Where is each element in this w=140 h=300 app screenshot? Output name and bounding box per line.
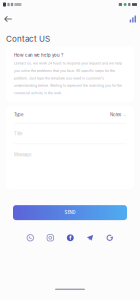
button[interactable]: Google xyxy=(106,234,113,241)
button[interactable]: Statistics xyxy=(122,13,140,25)
staticText: Type xyxy=(14,112,23,117)
staticText: ⌄ xyxy=(123,112,126,117)
button[interactable]: Facebook xyxy=(67,234,74,241)
staticText: Contact US xyxy=(6,34,50,44)
button[interactable]: Type xyxy=(6,106,134,123)
staticText: SEND xyxy=(64,210,75,215)
button[interactable]: SEND xyxy=(13,205,127,220)
staticText: Message xyxy=(14,152,31,157)
button[interactable]: Telegram xyxy=(87,235,93,241)
button[interactable]: Instagram xyxy=(47,234,54,241)
button[interactable]: Back xyxy=(0,13,20,25)
staticText: Notes xyxy=(110,112,121,117)
staticText: How can we help you ? xyxy=(14,53,63,58)
staticText: Contact us, we work 24 hours to respond … xyxy=(14,61,122,95)
button[interactable]: WhatsApp xyxy=(27,234,34,241)
staticText: Title xyxy=(14,131,22,136)
